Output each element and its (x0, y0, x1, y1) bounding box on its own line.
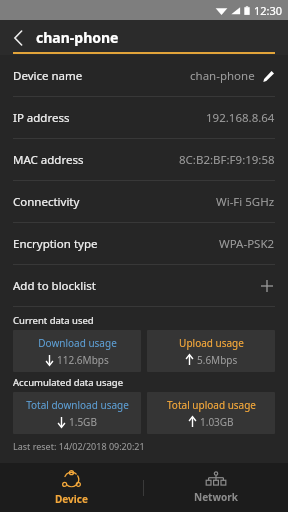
button[interactable]: Total upload usage (147, 392, 275, 434)
button[interactable]: IP address (0, 97, 288, 138)
staticText: Network (194, 490, 238, 504)
other: Edit device name (261, 69, 275, 83)
staticText: Accumulated data usage (13, 376, 124, 389)
button[interactable]: Connectivity (0, 181, 288, 222)
staticText: Download usage (38, 336, 117, 350)
staticText: 112.6Mbps (57, 353, 109, 367)
staticText: Total upload usage (167, 398, 256, 412)
button[interactable]: Add to blocklist (0, 265, 288, 306)
staticText: 1.03GB (200, 415, 234, 429)
button[interactable]: Network (144, 463, 288, 512)
staticText: Connectivity (13, 194, 80, 210)
button[interactable]: Back (0, 20, 36, 55)
staticText: IP address (13, 110, 70, 126)
button[interactable]: Download usage (13, 330, 141, 372)
staticText: Total download usage (26, 398, 129, 412)
other: Add to blocklist (259, 278, 275, 294)
staticText: Wi-Fi 5GHz (216, 194, 275, 210)
button[interactable]: Device (0, 463, 143, 512)
button[interactable]: Encryption type (0, 223, 288, 264)
staticText: 5.6Mbps (197, 353, 238, 367)
button[interactable]: MAC address (0, 139, 288, 180)
staticText: Device name (13, 68, 83, 84)
staticText: 1.5GB (69, 415, 97, 429)
staticText: Encryption type (13, 236, 98, 252)
staticText: 192.168.8.64 (206, 110, 275, 126)
staticText: Upload usage (179, 336, 244, 350)
staticText: Add to blocklist (13, 278, 96, 294)
staticText: chan-phone (190, 68, 255, 84)
button[interactable]: Upload usage (147, 330, 275, 372)
staticText: Device (55, 492, 88, 506)
staticText: 12:30 (254, 3, 283, 18)
staticText: 8C:B2:BF:F9:19:58 (179, 152, 275, 168)
staticText: Last reset: 14/02/2018 09:20:21 (13, 440, 145, 452)
button[interactable]: Total download usage (13, 392, 141, 434)
button[interactable]: Device name (0, 55, 288, 96)
staticText: WPA-PSK2 (219, 236, 275, 252)
staticText: Current data used (13, 314, 94, 327)
staticText: chan-phone (36, 28, 119, 47)
staticText: MAC address (13, 152, 84, 168)
